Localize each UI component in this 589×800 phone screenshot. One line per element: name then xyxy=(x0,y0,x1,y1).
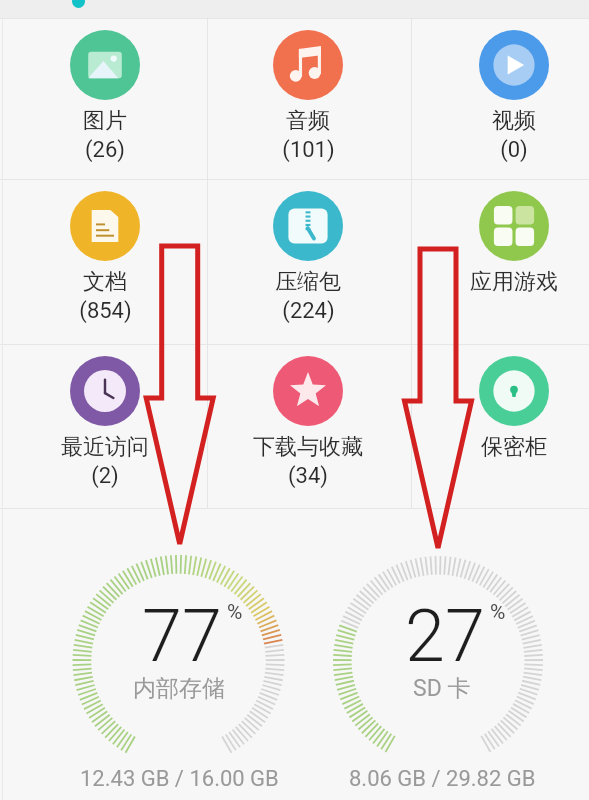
staticText: 图片 xyxy=(83,107,127,135)
button[interactable]: 最近访问 xyxy=(4,344,206,508)
staticText: 下载与收藏 xyxy=(253,433,363,461)
staticText: (0) xyxy=(500,137,528,163)
button[interactable]: 下载与收藏 xyxy=(207,344,409,508)
button[interactable]: 保密柜 xyxy=(413,344,589,508)
staticText: SD 卡 xyxy=(413,674,471,703)
staticText: 12.43 GB / 16.00 GB xyxy=(80,766,279,792)
staticText: (101) xyxy=(282,137,335,163)
button[interactable]: 视频 xyxy=(413,18,589,179)
staticText: 文档 xyxy=(83,268,127,296)
button[interactable]: 文档 xyxy=(4,179,206,344)
button[interactable]: 音频 xyxy=(207,18,409,179)
staticText: 音频 xyxy=(286,107,330,135)
staticText: 77 xyxy=(142,594,222,678)
staticText: 压缩包 xyxy=(275,268,341,296)
staticText: (2) xyxy=(91,463,119,489)
button[interactable]: 图片 xyxy=(4,18,206,179)
staticText: (26) xyxy=(85,137,125,163)
staticText: 视频 xyxy=(492,107,536,135)
staticText: 内部存储 xyxy=(133,674,225,703)
staticText: % xyxy=(227,600,243,625)
staticText: (854) xyxy=(79,298,132,324)
staticText: 保密柜 xyxy=(481,433,547,461)
staticText: 27 xyxy=(405,594,485,678)
button[interactable]: 压缩包 xyxy=(207,179,409,344)
button[interactable]: 应用游戏 xyxy=(413,179,589,344)
staticText: (224) xyxy=(282,298,335,324)
staticText: 8.06 GB / 29.82 GB xyxy=(349,766,536,792)
staticText: (34) xyxy=(288,463,328,489)
staticText: 应用游戏 xyxy=(470,268,558,296)
staticText: % xyxy=(490,600,506,625)
staticText: 最近访问 xyxy=(61,433,149,461)
